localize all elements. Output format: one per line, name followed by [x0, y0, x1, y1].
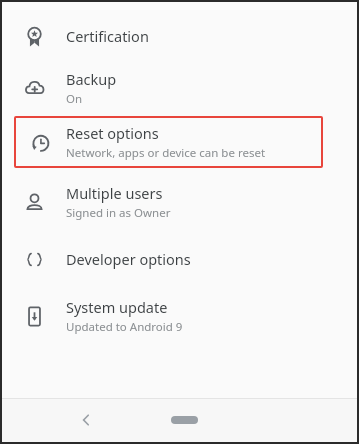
staticText: Certification [66, 26, 149, 46]
button[interactable]: Back [68, 402, 104, 438]
staticText: Multiple users [66, 183, 163, 203]
button[interactable]: Certification [2, 12, 357, 60]
staticText: Network, apps or device can be reset [66, 145, 266, 161]
staticText: Backup [66, 69, 117, 89]
button[interactable]: Home [162, 408, 206, 432]
staticText: Developer options [66, 249, 191, 269]
staticText: Signed in as Owner [66, 205, 171, 221]
staticText: Reset options [66, 123, 159, 143]
staticText: On [66, 91, 83, 107]
button[interactable]: Multiple users [2, 174, 357, 230]
staticText: Updated to Android 9 [66, 319, 183, 335]
button[interactable]: System update [2, 288, 357, 344]
staticText: System update [66, 297, 168, 317]
button[interactable]: Backup [2, 60, 357, 116]
button[interactable]: Developer options [2, 234, 357, 284]
button[interactable]: Reset options [14, 116, 323, 168]
